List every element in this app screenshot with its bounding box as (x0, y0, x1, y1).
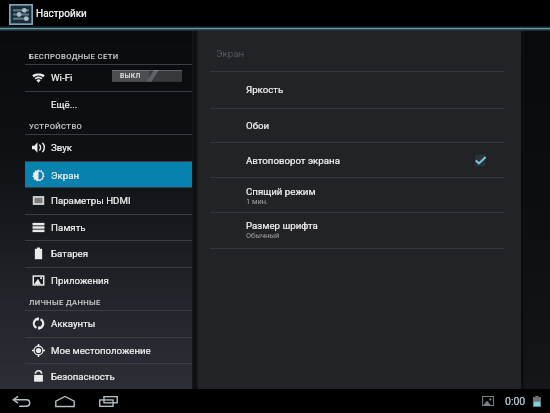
button[interactable]: Ещё... (25, 91, 192, 118)
staticText: Ещё... (51, 99, 78, 110)
staticText: УСТРОЙСТВО (29, 122, 83, 131)
button[interactable]: Батарея (25, 240, 192, 267)
staticText: Автоповорот экрана (246, 155, 340, 166)
staticText: Экран (51, 170, 80, 181)
button[interactable]: Спящий режим (198, 178, 521, 213)
button[interactable]: Аккаунты (25, 310, 192, 337)
staticText: Настройки (36, 8, 87, 20)
button[interactable]: Автоповорот экрана (198, 143, 521, 178)
button[interactable]: Экран (25, 162, 192, 188)
staticText: Размер шрифта (246, 220, 318, 231)
button[interactable]: Settings (9, 4, 33, 25)
button[interactable]: Wi-Fi (25, 64, 192, 91)
button[interactable]: Screenshot (482, 389, 494, 413)
button[interactable]: Back (10, 389, 34, 413)
button[interactable]: Звук (25, 134, 192, 161)
button[interactable]: Приложения (25, 267, 192, 294)
button[interactable]: Память (25, 214, 192, 241)
staticText: Яркость (246, 84, 284, 95)
staticText: 1 мин. (246, 197, 268, 206)
staticText: Память (51, 222, 86, 233)
button[interactable]: Мое местоположение (25, 337, 192, 364)
staticText: Параметры HDMI (51, 195, 131, 206)
staticText: ВЫКЛ (120, 72, 141, 80)
button[interactable]: Параметры HDMI (25, 187, 192, 214)
staticText: Спящий режим (246, 186, 316, 197)
button[interactable]: Home (53, 389, 77, 413)
staticText: БЕСПРОВОДНЫЕ СЕТИ (29, 52, 119, 61)
staticText: Приложения (51, 275, 109, 286)
button[interactable]: Wi-Fi toggle, off (112, 70, 182, 82)
staticText: Обои (246, 120, 270, 131)
staticText: ЛИЧНЫЕ ДАННЫЕ (29, 298, 101, 307)
staticText: Обычный (246, 231, 280, 240)
staticText: Безопасность (51, 371, 115, 382)
staticText: Экран (216, 48, 245, 59)
staticText: Звук (51, 142, 73, 153)
staticText: Аккаунты (51, 318, 96, 329)
button[interactable]: Recent apps (96, 389, 120, 413)
button[interactable]: Обои (198, 108, 521, 143)
button[interactable]: Безопасность (25, 363, 192, 390)
staticText: Wi-Fi (51, 72, 73, 83)
button[interactable]: Размер шрифта (198, 212, 521, 248)
staticText: Батарея (51, 248, 89, 259)
staticText: Мое местоположение (51, 345, 151, 356)
staticText: 0:00 (505, 395, 526, 407)
button[interactable]: Яркость (198, 71, 521, 107)
